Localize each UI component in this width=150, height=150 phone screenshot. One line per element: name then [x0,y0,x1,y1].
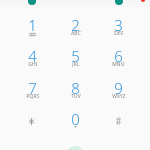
button[interactable]: 7 [11,78,54,109]
staticText: 9 [114,78,123,98]
staticText: 6 [114,46,123,66]
staticText: 7 [28,78,37,98]
staticText: 2 [71,15,80,35]
staticText: + [74,124,77,131]
button[interactable]: star [11,109,54,140]
staticText: JKL [72,61,80,68]
button[interactable]: 5 [54,46,97,77]
button[interactable]: 9 [97,78,140,109]
button[interactable]: Contacts [115,0,123,5]
button[interactable]: 2 [54,15,97,46]
staticText: DEF [114,30,124,37]
staticText: 5 [71,46,80,66]
staticText: WXYZ [112,93,126,100]
button[interactable]: 8 [54,78,97,109]
button[interactable]: 4 [11,46,54,77]
button[interactable]: pound [97,109,140,140]
staticText: 8 [71,78,80,98]
button[interactable]: 3 [97,15,140,46]
staticText: 0 [71,109,80,129]
staticText: MNO [112,61,125,68]
staticText: 3 [114,15,123,35]
button[interactable]: 0 [54,109,97,140]
button[interactable]: 6 [97,46,140,77]
staticText: ABC [71,30,81,37]
staticText: TUV [71,93,81,100]
button[interactable]: Speed dial [28,0,36,5]
button[interactable]: Call [65,146,85,150]
staticText: GHI [28,61,38,68]
staticText: PQRS [26,93,40,100]
staticText: 1 [28,15,37,35]
button[interactable]: 1 voicemail [11,15,54,46]
staticText: 4 [28,46,37,66]
